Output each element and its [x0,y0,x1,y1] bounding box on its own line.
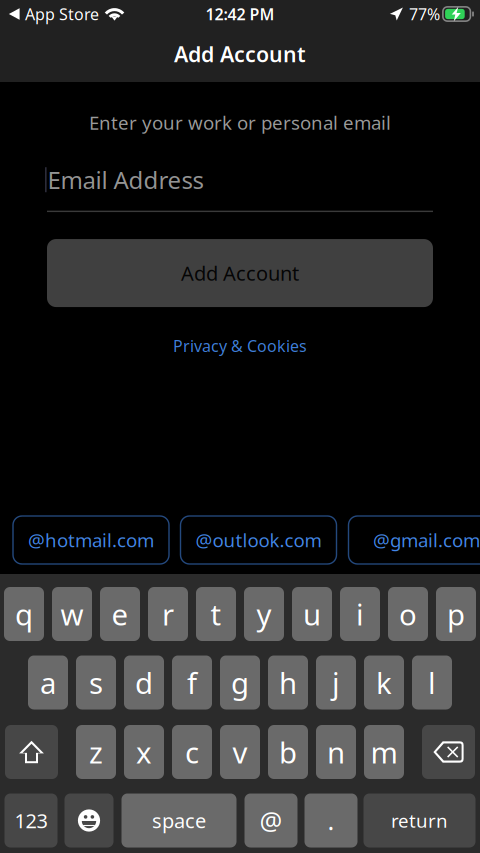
staticText: Email Address [48,164,204,196]
staticText: return [391,808,448,833]
button[interactable]: space [121,793,236,847]
staticText: e [111,594,128,633]
staticText: m [370,732,397,771]
button[interactable]: x [124,725,164,779]
staticText: h [279,663,297,702]
staticText: o [399,594,417,633]
button[interactable]: y [244,587,284,641]
button[interactable]: c [172,725,212,779]
staticText: y [256,594,271,633]
staticText: s [89,663,103,702]
button[interactable]: p [436,587,476,641]
staticText: x [136,732,152,771]
button[interactable]: a [28,655,68,709]
button[interactable]: r [148,587,188,641]
staticText: l [428,663,436,702]
staticText: @outlook.com [195,528,321,552]
button[interactable]: j [316,655,356,709]
button[interactable]: f [172,655,212,709]
staticText: Add Account [181,260,299,286]
button[interactable]: @hotmail.com [13,516,169,564]
staticText: @ [259,804,282,837]
staticText: q [15,594,33,633]
staticText: . [327,804,334,837]
button[interactable]: 123 [4,793,57,847]
staticText: space [152,807,206,834]
staticText: Enter your work or personal email [89,110,391,135]
staticText: 77% [409,3,440,25]
button[interactable]: n [316,725,356,779]
staticText: u [303,594,321,633]
staticText: v [232,732,247,771]
button[interactable]: @outlook.com [180,516,336,564]
button[interactable]: h [268,655,308,709]
button[interactable]: i [340,587,380,641]
button[interactable]: @ [244,793,297,847]
button[interactable]: Shift [5,725,58,779]
button[interactable]: w [52,587,92,641]
staticText: i [356,594,364,633]
button[interactable]: Delete [422,725,475,779]
button[interactable]: Privacy & Cookies [163,329,317,362]
button[interactable]: e [100,587,140,641]
staticText: w [60,594,83,633]
button[interactable]: u [292,587,332,641]
button[interactable]: z [76,725,116,779]
staticText: r [162,594,174,633]
staticText: 12:42 PM [205,3,274,25]
staticText: a [40,663,56,702]
button[interactable]: m [364,725,404,779]
button[interactable]: return [363,793,475,847]
button[interactable]: q [4,587,44,641]
staticText: f [187,663,197,702]
button[interactable]: o [388,587,428,641]
button[interactable]: t [196,587,236,641]
button[interactable]: Add Account [47,239,433,307]
button[interactable]: s [76,655,116,709]
button[interactable]: d [124,655,164,709]
staticText: Add Account [174,40,306,68]
staticText: p [447,594,465,633]
button[interactable]: g [220,655,260,709]
staticText: @gmail.com [373,528,480,552]
button[interactable]: @gmail.com [348,516,480,564]
staticText: j [332,663,340,702]
staticText: t [210,594,221,633]
staticText: App Store [25,3,99,25]
staticText: Privacy & Cookies [173,335,307,356]
staticText: k [376,663,392,702]
staticText: c [185,732,199,771]
staticText: d [135,663,153,702]
staticText: g [231,663,249,702]
staticText: z [89,732,103,771]
staticText: n [327,732,345,771]
staticText: b [279,732,297,771]
button[interactable]: b [268,725,308,779]
staticText: @hotmail.com [28,528,154,552]
button[interactable]: k [364,655,404,709]
button[interactable]: Emoji [64,793,113,847]
button[interactable]: v [220,725,260,779]
button[interactable]: . [304,793,357,847]
staticText: 123 [14,807,47,834]
button[interactable]: l [412,655,452,709]
